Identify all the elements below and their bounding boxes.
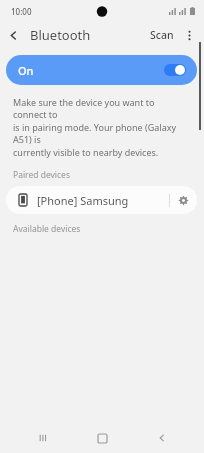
button[interactable]: On bbox=[6, 55, 197, 85]
button[interactable]: Recents bbox=[26, 423, 60, 453]
staticText: Available devices bbox=[13, 223, 81, 235]
button[interactable]: Scan bbox=[146, 24, 178, 46]
button[interactable]: Device settings bbox=[170, 186, 197, 214]
staticText: On bbox=[18, 63, 34, 78]
button[interactable]: Home bbox=[85, 423, 119, 453]
staticText: is in pairing mode. Your phone (Galaxy A… bbox=[13, 121, 190, 146]
staticText: 10:00 bbox=[11, 6, 32, 17]
button[interactable]: More options bbox=[178, 24, 200, 46]
button[interactable]: Back bbox=[0, 22, 26, 48]
staticText: Make sure the device you want to connect… bbox=[13, 96, 190, 121]
button[interactable]: [Phone] Samsung bbox=[6, 186, 197, 214]
button[interactable]: Back bbox=[145, 423, 179, 453]
staticText: Paired devices bbox=[13, 169, 70, 181]
staticText: [Phone] Samsung bbox=[37, 193, 129, 208]
staticText: Bluetooth bbox=[30, 26, 91, 44]
staticText: currently visible to nearby devices. bbox=[13, 146, 159, 158]
staticText: Scan bbox=[150, 28, 174, 42]
